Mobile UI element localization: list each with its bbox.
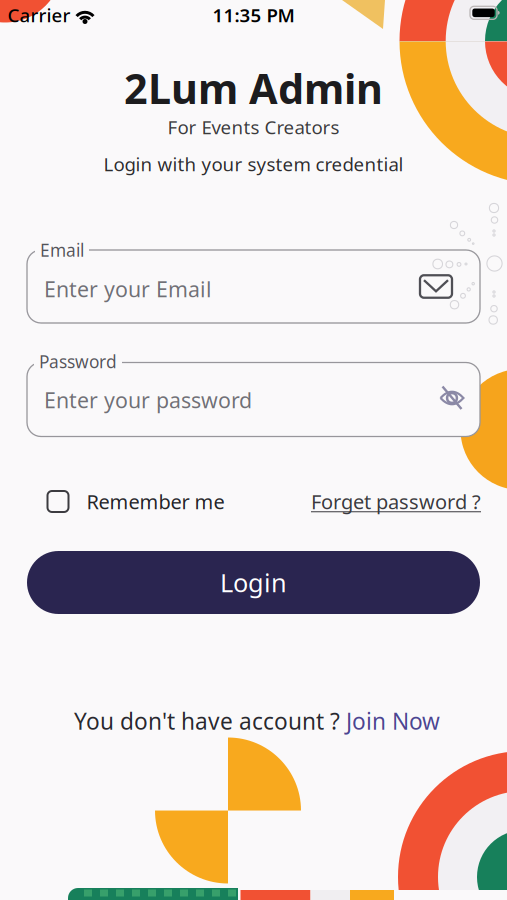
button[interactable]: Forget password ?	[311, 488, 481, 515]
staticText: Login with your system credential	[103, 152, 403, 176]
staticText: Login	[220, 566, 287, 599]
staticText: 2Lum Admin	[124, 61, 383, 115]
staticText: Carrier	[7, 3, 70, 27]
staticText: You don't have account ?	[74, 706, 346, 736]
staticText: Forget password ?	[311, 488, 481, 515]
staticText: For Events Creators	[167, 115, 339, 139]
staticText: Enter your Email	[44, 275, 212, 303]
staticText: Password	[39, 350, 117, 373]
button[interactable]: Remember me	[47, 488, 224, 515]
staticText: Join Now	[346, 706, 440, 736]
staticText: Remember me	[86, 488, 224, 515]
staticText: Enter your password	[44, 386, 252, 414]
staticText: 11:35 PM	[212, 3, 294, 27]
button[interactable]: Login	[27, 551, 480, 614]
button[interactable]: Join Now	[346, 706, 440, 736]
staticText: Email	[40, 238, 84, 261]
